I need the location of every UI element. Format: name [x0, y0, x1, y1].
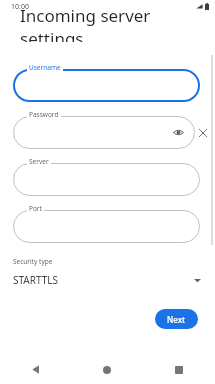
- staticText: Port: [29, 204, 42, 213]
- staticText: Username: [29, 63, 61, 72]
- button[interactable]: [13, 210, 200, 243]
- button[interactable]: [13, 116, 195, 149]
- button[interactable]: [13, 163, 200, 196]
- button[interactable]: Clear: [195, 125, 211, 141]
- staticText: STARTTLS: [13, 273, 194, 287]
- staticText: Server: [29, 157, 49, 166]
- button[interactable]: Home: [71, 355, 143, 384]
- staticText: Next: [167, 314, 186, 325]
- button[interactable]: Recent apps: [143, 355, 215, 384]
- staticText: Incoming server settings: [20, 4, 151, 42]
- button[interactable]: [13, 69, 200, 102]
- staticText: Security type: [13, 257, 53, 266]
- staticText: Password: [29, 110, 59, 119]
- button[interactable]: Next: [155, 309, 198, 329]
- staticText: 10:00: [11, 2, 29, 12]
- button[interactable]: Security type: [0, 257, 215, 287]
- button[interactable]: Show password: [172, 126, 185, 139]
- button[interactable]: Back: [0, 355, 71, 384]
